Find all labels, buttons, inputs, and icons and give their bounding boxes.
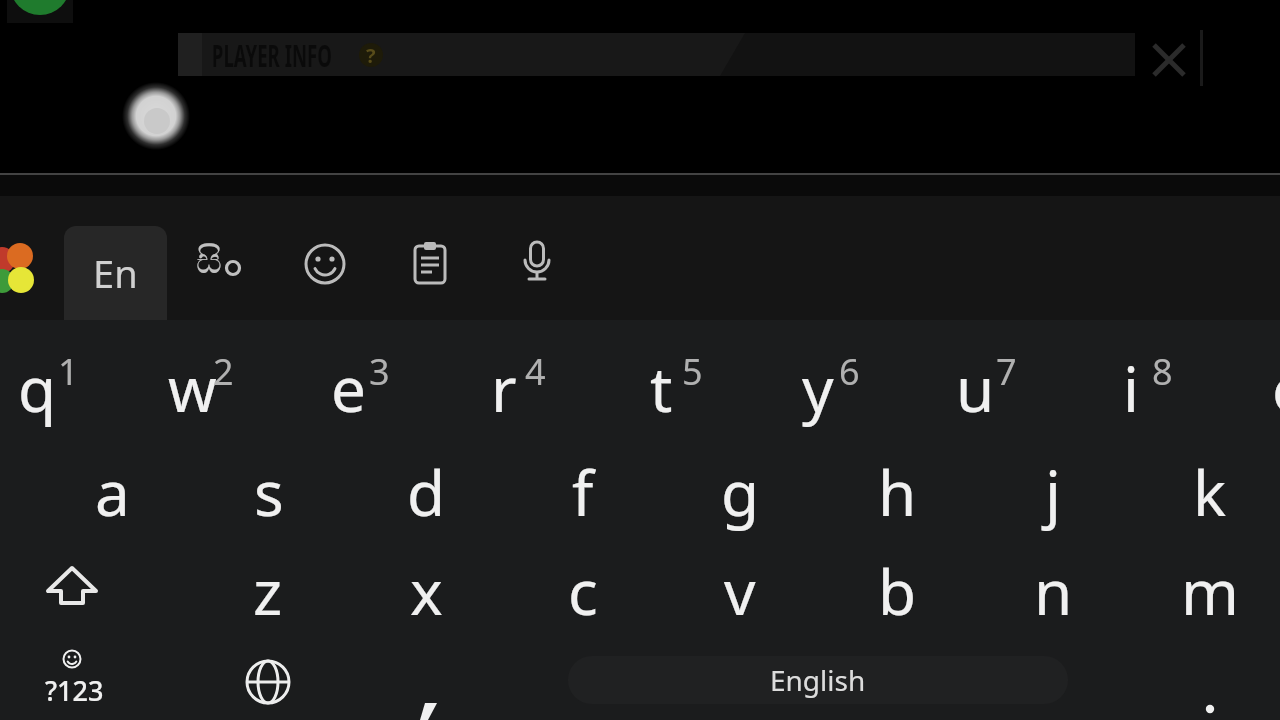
button[interactable]: y	[748, 330, 888, 426]
button[interactable]: c	[513, 543, 653, 639]
button[interactable]: u	[905, 330, 1045, 426]
button[interactable]: e	[278, 330, 418, 426]
staticText: r	[491, 346, 517, 430]
staticText: ?	[366, 42, 376, 69]
staticText: a	[95, 450, 130, 534]
button[interactable]: t	[591, 330, 731, 426]
staticText: m	[1181, 549, 1239, 633]
button[interactable]: a	[42, 444, 182, 540]
button[interactable]	[301, 240, 349, 288]
staticText: g	[721, 450, 760, 534]
button[interactable]: d	[356, 444, 496, 540]
button[interactable]	[395, 660, 455, 720]
button[interactable]: s	[199, 444, 339, 540]
staticText: w	[168, 346, 217, 430]
button[interactable]: f	[513, 444, 653, 540]
button[interactable]: q	[0, 330, 107, 426]
button[interactable]: v	[670, 543, 810, 639]
staticText: සි	[196, 244, 222, 280]
button[interactable]: r	[434, 330, 574, 426]
button[interactable]	[406, 240, 454, 288]
staticText: 1	[58, 347, 79, 396]
staticText: 5	[682, 347, 703, 396]
staticText: b	[878, 549, 917, 633]
button[interactable]	[178, 33, 1135, 76]
button[interactable]: z	[198, 543, 338, 639]
staticText: d	[407, 450, 446, 534]
button[interactable]: n	[983, 543, 1123, 639]
staticText: o	[1272, 346, 1280, 430]
button[interactable]: English	[568, 656, 1068, 704]
button[interactable]	[22, 556, 122, 618]
staticText: v	[724, 549, 756, 633]
staticText: English	[770, 661, 866, 699]
staticText: z	[253, 549, 283, 633]
staticText: 3	[369, 347, 390, 396]
button[interactable]	[1152, 43, 1186, 77]
button[interactable]: j	[983, 444, 1123, 540]
staticText: y	[802, 346, 834, 430]
button[interactable]	[0, 236, 48, 300]
button[interactable]: i	[1061, 330, 1201, 426]
button[interactable]	[12, 640, 132, 720]
button[interactable]: w	[122, 330, 262, 426]
staticText: x	[410, 549, 443, 633]
button[interactable]: m	[1140, 543, 1280, 639]
staticText: e	[331, 346, 366, 430]
staticText: f	[572, 450, 594, 534]
staticText: n	[1034, 549, 1073, 633]
button[interactable]	[1180, 670, 1240, 720]
staticText: 8	[1152, 347, 1173, 396]
staticText: c	[568, 549, 598, 633]
button[interactable]	[242, 656, 294, 708]
button[interactable]: h	[827, 444, 967, 540]
staticText: En	[93, 247, 138, 299]
staticText: 7	[996, 347, 1017, 396]
button[interactable]: සි	[154, 215, 264, 309]
button[interactable]: g	[670, 444, 810, 540]
staticText: t	[650, 346, 673, 430]
staticText: j	[1045, 450, 1061, 534]
button[interactable]: k	[1140, 444, 1280, 540]
staticText: u	[956, 346, 995, 430]
staticText: PLAYER INFO	[212, 35, 332, 76]
staticText: s	[254, 450, 284, 534]
button[interactable]: x	[356, 543, 496, 639]
button[interactable]	[513, 238, 561, 290]
button[interactable]: b	[827, 543, 967, 639]
staticText: ?123	[45, 672, 104, 709]
staticText: q	[18, 346, 57, 430]
button[interactable]: o	[1221, 330, 1280, 426]
staticText: 6	[839, 347, 860, 396]
staticText: k	[1193, 450, 1227, 534]
staticText: h	[878, 450, 917, 534]
staticText: i	[1123, 346, 1139, 430]
staticText: 4	[525, 347, 546, 396]
staticText: 2	[213, 347, 234, 396]
button[interactable]: En	[64, 226, 167, 320]
